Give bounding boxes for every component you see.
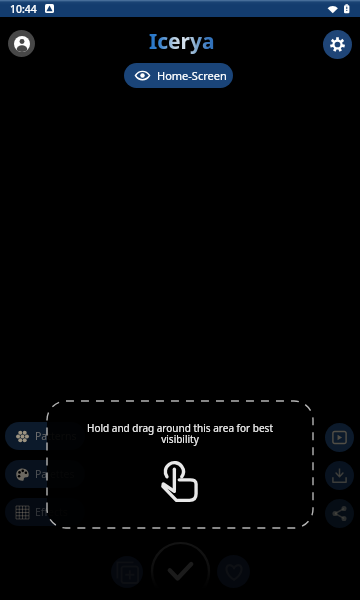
button[interactable]: Play video — [325, 423, 354, 452]
button[interactable]: Share — [325, 499, 354, 528]
button[interactable]: Account — [8, 30, 35, 57]
staticText: Effects — [35, 505, 68, 519]
button[interactable]: Home-Screen — [124, 63, 233, 88]
button[interactable]: Add to collection — [111, 556, 143, 588]
staticText: Hold and drag around this area for best … — [85, 421, 275, 446]
staticText: 10:44 — [10, 2, 37, 16]
button[interactable]: Patterns — [5, 422, 85, 450]
button[interactable]: Palettes — [5, 460, 85, 488]
staticText: Patterns — [35, 429, 77, 443]
staticText: Home-Screen — [157, 68, 227, 83]
staticText: Palettes — [35, 467, 75, 481]
button[interactable]: Download — [325, 461, 354, 490]
staticText: Icerya — [149, 27, 215, 56]
button[interactable]: Favorite — [217, 555, 250, 588]
button[interactable]: Settings — [323, 30, 352, 59]
button[interactable]: Confirm — [152, 543, 209, 600]
button[interactable]: Effects — [5, 498, 85, 526]
